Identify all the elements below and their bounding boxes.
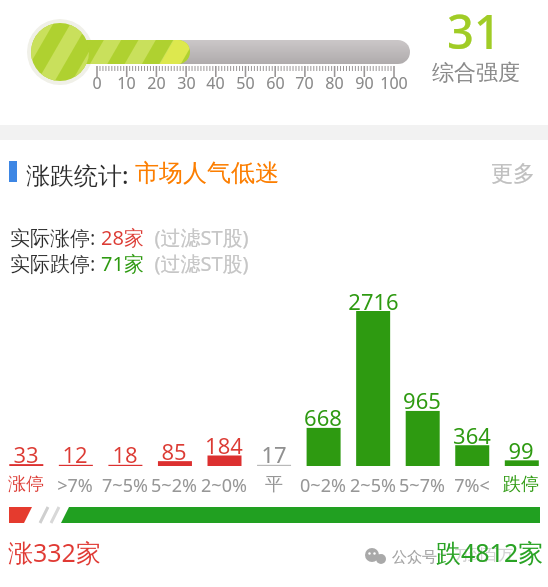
staticText: 85 <box>161 436 187 466</box>
staticText: 市场人气低迷 <box>135 158 279 188</box>
staticText: 实际涨停: <box>10 224 101 251</box>
staticText: 5~2% <box>151 473 197 498</box>
staticText: 364 <box>453 420 491 450</box>
staticText: 60 <box>266 72 285 94</box>
staticText: 184 <box>205 430 243 460</box>
staticText: 50 <box>236 72 255 94</box>
staticText: 10 <box>117 72 136 94</box>
staticText: 0~2% <box>300 473 346 498</box>
staticText: 更多 <box>491 160 535 188</box>
staticText: 30 <box>177 72 196 94</box>
staticText: 33 <box>13 439 39 469</box>
staticText: 7~5% <box>102 473 148 498</box>
staticText: 跌停 <box>503 473 539 496</box>
staticText: 80 <box>325 72 344 94</box>
staticText: 28家 <box>101 224 144 251</box>
staticText: 965 <box>403 385 441 415</box>
staticText: 一刀到百万 <box>438 546 513 565</box>
staticText: 100 <box>380 72 408 94</box>
staticText: 涨332家 <box>8 535 101 569</box>
staticText: 5~7% <box>399 473 445 498</box>
staticText: 2~5% <box>350 473 396 498</box>
staticText: 18 <box>112 439 138 469</box>
staticText: 公众号 <box>392 548 437 567</box>
staticText: 20 <box>147 72 166 94</box>
staticText: 2716 <box>348 286 399 316</box>
button[interactable]: 更多 <box>491 160 535 188</box>
staticText: 40 <box>206 72 225 94</box>
staticText: 7%< <box>454 473 490 498</box>
staticText: (过滤ST股) <box>144 250 249 277</box>
staticText: 12 <box>62 439 88 469</box>
button[interactable]: 涨跌统计: <box>26 158 279 191</box>
staticText: 涨停 <box>8 473 44 496</box>
staticText: 99 <box>508 435 534 465</box>
staticText: 0 <box>92 72 102 94</box>
staticText: 平 <box>265 473 283 496</box>
staticText: 70 <box>295 72 314 94</box>
staticText: 综合强度 <box>432 59 520 87</box>
staticText: 跌4812家 <box>436 535 544 569</box>
staticText: 90 <box>355 72 374 94</box>
staticText: 668 <box>304 402 342 432</box>
staticText: 31 <box>447 0 501 63</box>
staticText: 71家 <box>101 250 144 277</box>
staticText: (过滤ST股) <box>144 224 249 251</box>
staticText: 涨跌统计: <box>26 158 135 191</box>
staticText: 实际跌停: <box>10 250 101 277</box>
staticText: 2~0% <box>201 473 247 498</box>
staticText: >7% <box>57 473 93 498</box>
staticText: 17 <box>261 439 287 469</box>
